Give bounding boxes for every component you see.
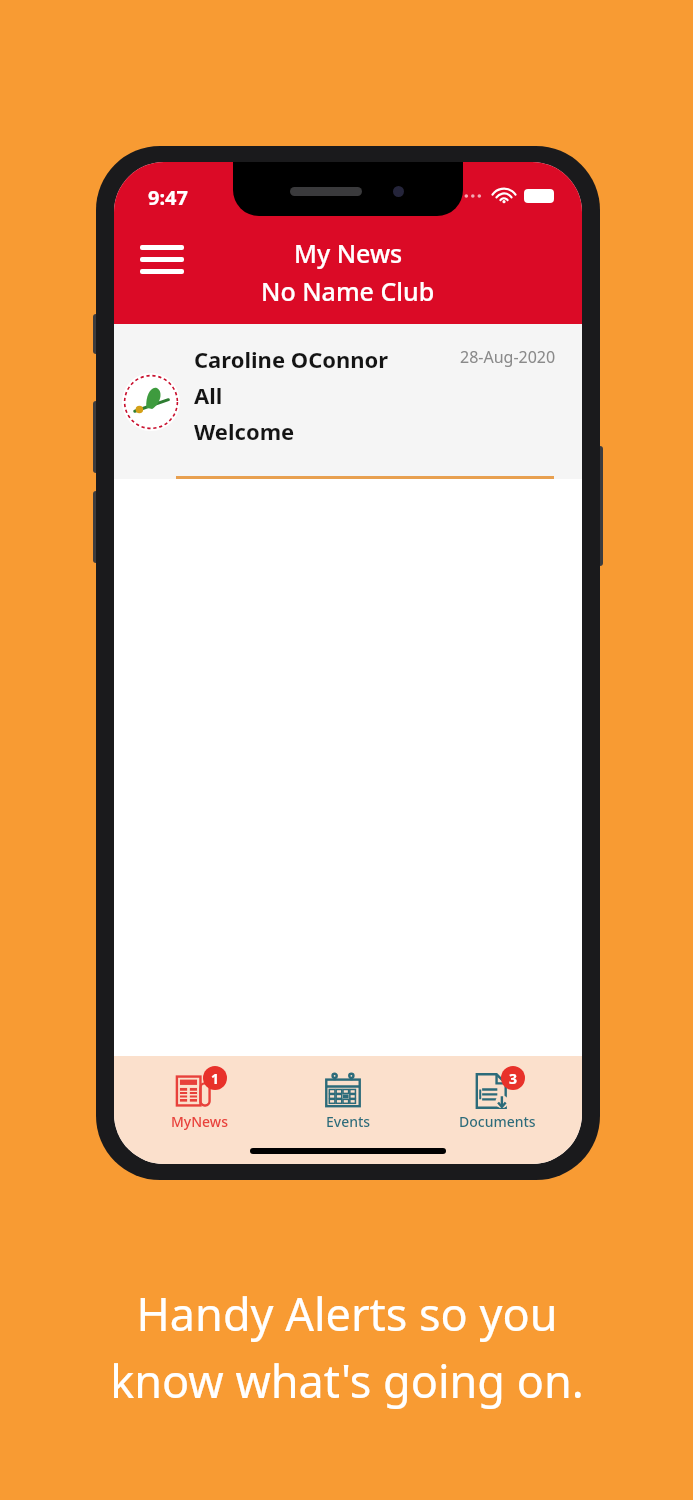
button[interactable]: Caroline OConnor <box>114 324 582 479</box>
staticText: 1 <box>211 1069 220 1088</box>
button[interactable]: 3 <box>433 1066 561 1131</box>
button[interactable]: Open navigation menu <box>140 237 192 281</box>
staticText: Welcome <box>194 416 295 446</box>
staticText: 3 <box>509 1069 518 1088</box>
button[interactable]: Events <box>284 1066 412 1131</box>
staticText: All <box>194 380 223 410</box>
staticText: 28-Aug-2020 <box>460 346 556 368</box>
button[interactable]: 1 <box>135 1066 263 1131</box>
staticText: 9:47 <box>148 184 188 211</box>
staticText: MyNews <box>171 1112 228 1131</box>
staticText: Documents <box>459 1112 536 1131</box>
staticText: My News <box>294 236 403 270</box>
staticText: No Name Club <box>261 274 435 308</box>
staticText: Caroline OConnor <box>194 344 389 374</box>
staticText: Handy Alerts so you <box>136 1283 558 1344</box>
staticText: know what's going on. <box>110 1350 584 1411</box>
staticText: Events <box>326 1112 371 1131</box>
